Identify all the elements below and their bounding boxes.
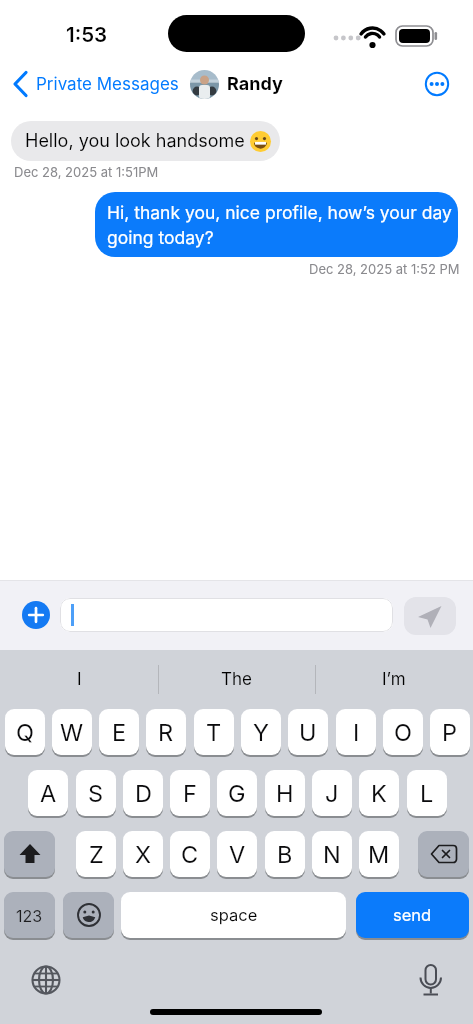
button[interactable]: I’m (315, 650, 473, 709)
staticText: E (112, 718, 127, 746)
button[interactable]: space (121, 892, 346, 938)
button[interactable]: K (359, 770, 399, 816)
staticText: D (135, 779, 152, 807)
staticText: X (135, 840, 152, 868)
button[interactable]: I (336, 709, 376, 755)
staticText: C (181, 840, 199, 868)
staticText: Dec 28, 2025 at 1:52 PM (309, 261, 460, 277)
button[interactable]: 123 (4, 892, 55, 938)
button[interactable]: C (170, 831, 210, 877)
staticText: Dec 28, 2025 at 1:51PM (14, 164, 159, 180)
button[interactable]: Private Messages (10, 64, 190, 104)
staticText: W (60, 718, 84, 746)
button[interactable] (418, 831, 469, 877)
staticText: N (323, 840, 341, 868)
button[interactable]: T (194, 709, 234, 755)
staticText: B (277, 840, 293, 868)
staticText: 123 (16, 906, 43, 925)
staticText: P (442, 718, 458, 746)
button[interactable] (423, 70, 451, 98)
button[interactable]: S (76, 770, 116, 816)
staticText: A (40, 779, 57, 807)
button[interactable] (60, 598, 393, 632)
staticText: T (206, 718, 222, 746)
button[interactable]: N (312, 831, 352, 877)
staticText: K (371, 779, 387, 807)
button[interactable]: U (288, 709, 328, 755)
staticText: send (393, 905, 432, 925)
staticText: The (221, 669, 252, 690)
button[interactable]: send (356, 892, 469, 938)
staticText: U (299, 718, 317, 746)
button[interactable]: D (123, 770, 163, 816)
button[interactable]: B (265, 831, 305, 877)
staticText: space (210, 905, 258, 925)
button[interactable]: The (158, 650, 315, 709)
staticText: L (420, 779, 434, 807)
button[interactable]: R (146, 709, 186, 755)
button[interactable]: Q (5, 709, 45, 755)
button[interactable]: E (99, 709, 139, 755)
staticText: H (276, 779, 294, 807)
button[interactable]: O (383, 709, 423, 755)
button[interactable] (404, 597, 456, 635)
staticText: Q (16, 718, 34, 746)
staticText: I (353, 718, 360, 746)
button[interactable]: I (0, 650, 158, 709)
button[interactable] (22, 601, 50, 629)
button[interactable]: H (265, 770, 305, 816)
staticText: Y (253, 718, 269, 746)
staticText: F (183, 779, 197, 807)
button[interactable]: G (217, 770, 257, 816)
staticText: J (325, 779, 339, 807)
staticText: O (394, 718, 412, 746)
button[interactable]: L (407, 770, 447, 816)
button[interactable]: M (359, 831, 399, 877)
button[interactable] (413, 961, 443, 997)
staticText: I’m (382, 669, 406, 690)
staticText: Z (89, 840, 104, 868)
staticText: G (228, 779, 246, 807)
button[interactable]: J (312, 770, 352, 816)
button[interactable]: Z (76, 831, 116, 877)
button[interactable]: V (217, 831, 257, 877)
button[interactable]: F (170, 770, 210, 816)
staticText: Hi, thank you, nice profile, how’s your … (107, 202, 452, 248)
button[interactable] (63, 892, 114, 938)
staticText: S (88, 779, 104, 807)
staticText: I (77, 669, 82, 690)
staticText: 1:53 (66, 22, 108, 47)
staticText: Randy (227, 73, 283, 95)
button[interactable]: P (430, 709, 470, 755)
staticText: Private Messages (36, 74, 179, 95)
staticText: Hello, you look handsome (25, 130, 250, 152)
staticText: V (229, 840, 246, 868)
button[interactable]: X (123, 831, 163, 877)
button[interactable] (4, 831, 55, 877)
staticText: M (368, 840, 390, 868)
button[interactable]: W (52, 709, 92, 755)
button[interactable]: A (28, 770, 68, 816)
button[interactable]: Y (241, 709, 281, 755)
button[interactable] (31, 965, 61, 995)
staticText: R (158, 718, 174, 746)
